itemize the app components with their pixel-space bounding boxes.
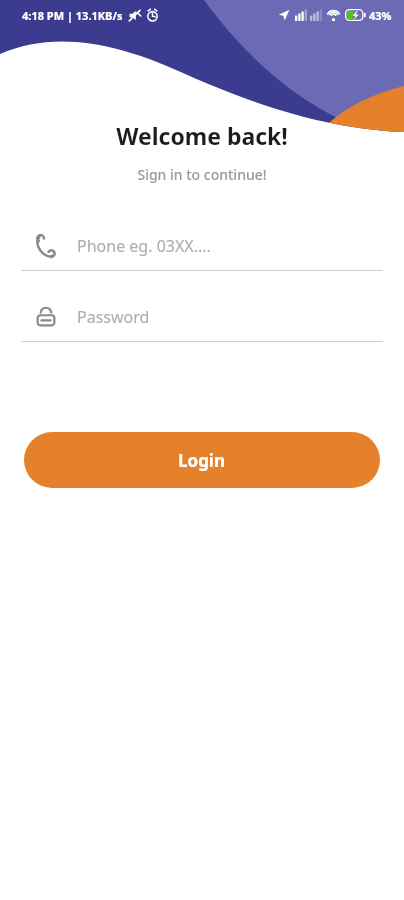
button[interactable]: Login xyxy=(24,432,380,488)
staticText: Welcome back! xyxy=(116,120,288,151)
other: Phone number xyxy=(35,235,57,257)
staticText: Password xyxy=(77,306,150,328)
staticText: Login xyxy=(178,449,226,472)
staticText: 4:18 PM | 13.1KB/s xyxy=(22,8,123,23)
button[interactable]: Password xyxy=(21,293,383,342)
staticText: Sign in to continue! xyxy=(137,165,267,184)
staticText: 43% xyxy=(369,8,392,23)
button[interactable]: Phone number xyxy=(21,222,383,271)
other: Password xyxy=(35,306,57,328)
staticText: Phone eg. 03XX.... xyxy=(77,235,211,257)
